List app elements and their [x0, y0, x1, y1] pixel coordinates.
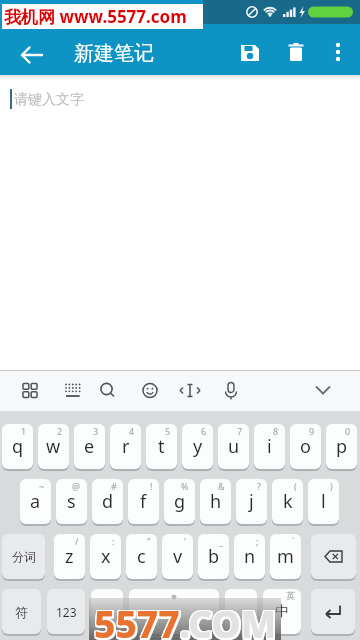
button[interactable]: k	[272, 479, 303, 524]
staticText: 5577.COM	[93, 597, 276, 639]
staticText: m	[277, 544, 294, 569]
button[interactable]	[216, 376, 246, 406]
staticText: t	[158, 434, 165, 459]
button[interactable]	[311, 534, 356, 579]
button[interactable]: e	[74, 424, 105, 469]
staticText: g	[174, 489, 186, 514]
staticText: 5577.COM	[94, 598, 277, 640]
staticText: z	[65, 544, 74, 569]
staticText: 3	[93, 425, 99, 437]
button[interactable]: y	[182, 424, 213, 469]
staticText: w	[46, 434, 61, 459]
staticText: o	[300, 434, 311, 459]
staticText: q	[12, 434, 24, 459]
staticText: 4	[129, 425, 135, 437]
button[interactable]: s	[56, 479, 87, 524]
button[interactable]: d	[92, 479, 123, 524]
button[interactable]: v	[162, 534, 193, 579]
button[interactable]: u	[218, 424, 249, 469]
staticText: #	[111, 480, 117, 492]
staticText: 5577.COM	[96, 598, 279, 640]
button[interactable]: 。	[225, 589, 257, 634]
button[interactable]: z	[54, 534, 85, 579]
staticText: 5577.COM	[94, 597, 277, 639]
staticText: ;	[256, 535, 259, 547]
button[interactable]: q	[2, 424, 33, 469]
staticText: 5577.COM	[96, 597, 279, 639]
button[interactable]	[175, 376, 205, 406]
staticText: /	[75, 535, 79, 547]
button[interactable]: m	[270, 534, 301, 579]
button[interactable]	[311, 589, 355, 634]
staticText: ?	[257, 480, 261, 492]
button[interactable]: l	[308, 479, 339, 524]
button[interactable]: w	[38, 424, 69, 469]
staticText: !	[150, 480, 153, 492]
button[interactable]	[57, 376, 87, 406]
staticText: &	[218, 480, 225, 492]
staticText: r	[122, 434, 130, 459]
staticText: n	[244, 544, 256, 569]
staticText: ,	[105, 601, 110, 623]
staticText: x	[101, 544, 111, 569]
button[interactable]: ,	[91, 589, 123, 634]
button[interactable]: p	[326, 424, 357, 469]
staticText: 5577.COM	[93, 598, 276, 640]
staticText: j	[249, 489, 254, 514]
staticText: 分词	[12, 549, 36, 564]
staticText: 英	[286, 590, 295, 601]
button[interactable]: 分词	[2, 534, 45, 579]
button[interactable]: g	[164, 479, 195, 524]
staticText: h	[210, 489, 222, 514]
staticText: a	[30, 489, 41, 514]
staticText: 6	[201, 425, 207, 437]
staticText: 123	[56, 604, 77, 620]
button[interactable]: f	[128, 479, 159, 524]
button[interactable]	[135, 376, 165, 406]
button[interactable]: i	[254, 424, 285, 469]
staticText: l	[321, 489, 326, 514]
button[interactable]	[318, 35, 358, 75]
button[interactable]: h	[200, 479, 231, 524]
staticText: v	[173, 544, 183, 569]
staticText: :	[112, 535, 115, 547]
button[interactable]: 符	[2, 589, 41, 634]
button[interactable]: 123	[47, 589, 85, 634]
staticText: 9	[309, 425, 315, 437]
staticText: @	[72, 480, 81, 492]
button[interactable]: j	[236, 479, 267, 524]
button[interactable]: o	[290, 424, 321, 469]
staticText: f	[140, 489, 147, 514]
button[interactable]: a	[20, 479, 51, 524]
button[interactable]	[308, 376, 338, 406]
button[interactable]: c	[126, 534, 157, 579]
staticText: b	[208, 544, 220, 569]
staticText: u	[228, 434, 240, 459]
staticText: 8	[273, 425, 279, 437]
staticText: ~	[39, 480, 45, 492]
button[interactable]	[276, 35, 316, 75]
button[interactable]: b	[198, 534, 229, 579]
button[interactable]: x	[90, 534, 121, 579]
staticText: k	[283, 489, 293, 514]
button[interactable]	[230, 35, 270, 75]
staticText: s	[67, 489, 76, 514]
button[interactable]	[93, 376, 123, 406]
button[interactable]	[15, 376, 45, 406]
button[interactable]: 中	[263, 589, 301, 634]
staticText: %	[181, 480, 189, 492]
button[interactable]	[129, 589, 219, 634]
button[interactable]: r	[110, 424, 141, 469]
staticText: 7	[237, 425, 243, 437]
staticText: 1	[21, 425, 27, 437]
staticText: )	[330, 480, 333, 492]
button[interactable]: t	[146, 424, 177, 469]
staticText: 0	[345, 425, 351, 437]
button[interactable]: n	[234, 534, 265, 579]
button[interactable]	[12, 35, 52, 75]
staticText: c	[137, 544, 146, 569]
staticText: 请键入文字	[14, 91, 84, 109]
staticText: y	[193, 434, 203, 459]
staticText: '	[184, 535, 187, 547]
staticText: (	[294, 480, 297, 492]
